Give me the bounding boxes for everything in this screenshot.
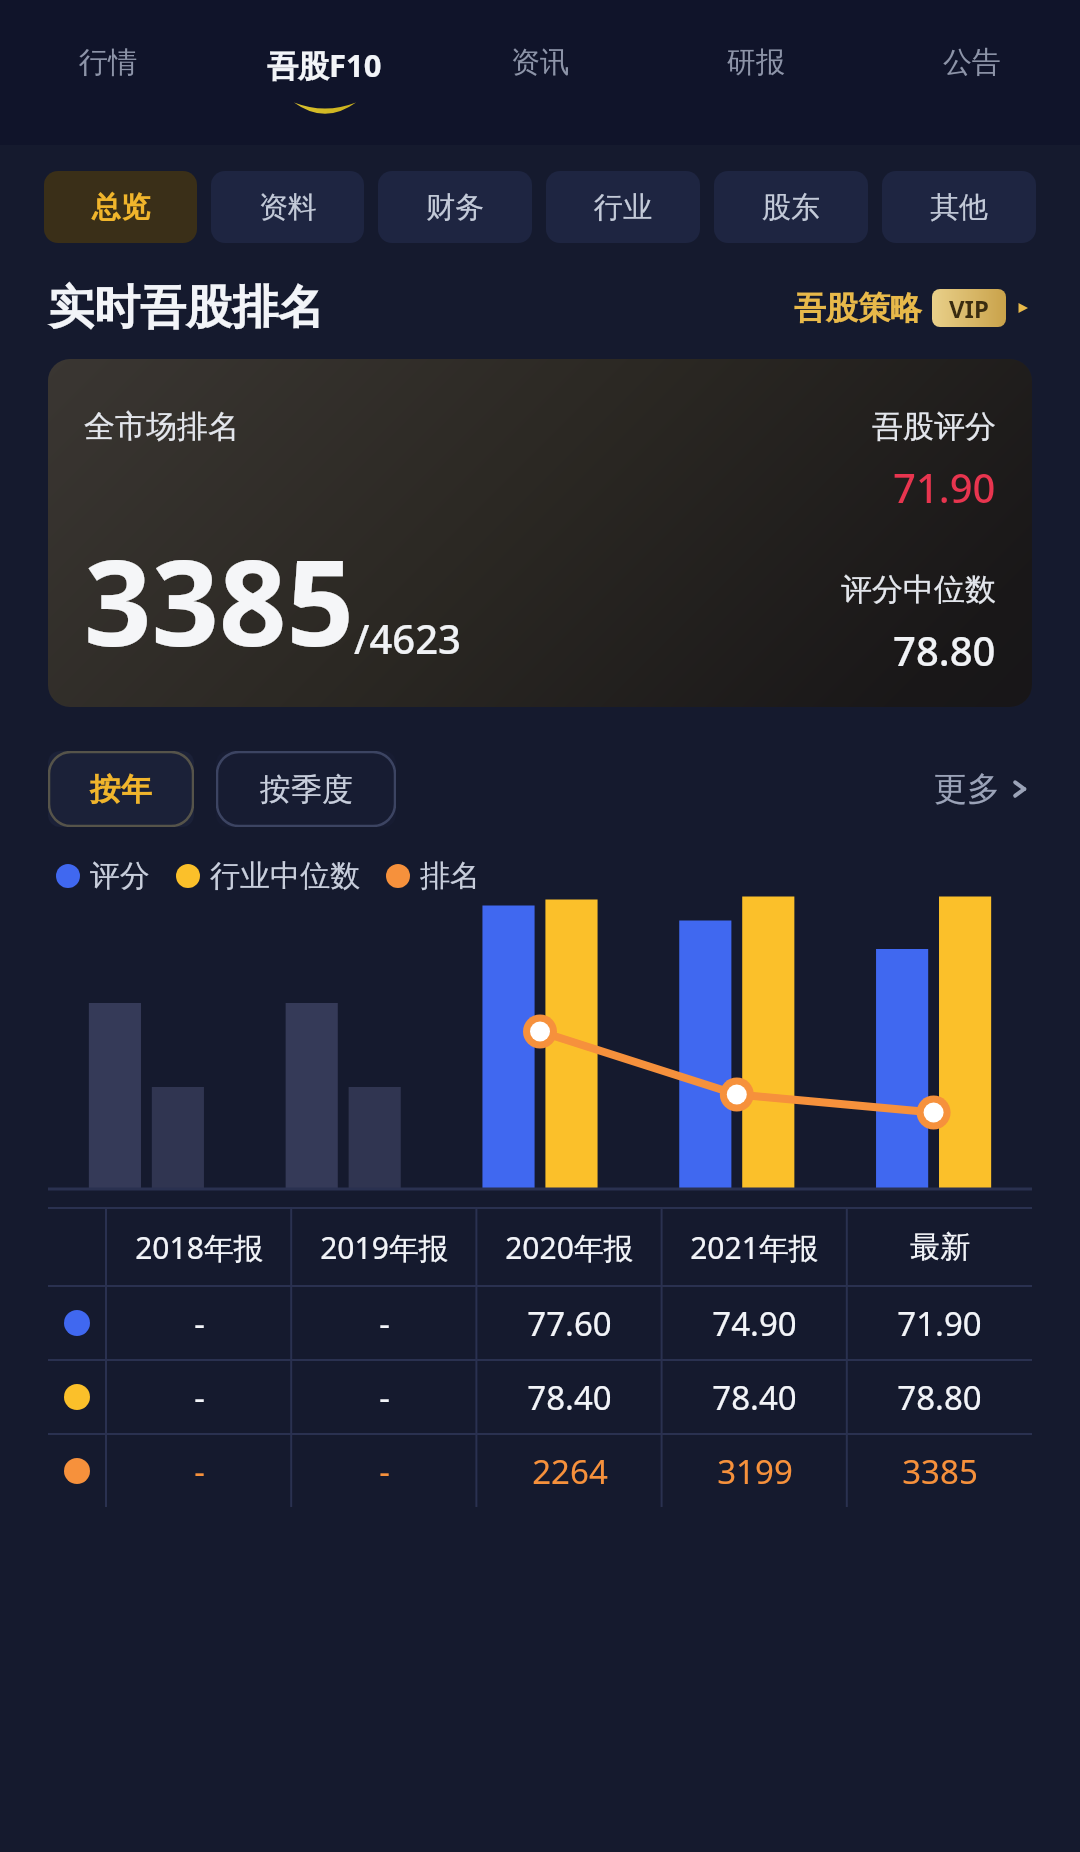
staticText: 78.40 xyxy=(527,1375,612,1420)
button[interactable]: 资料 xyxy=(211,171,364,243)
button[interactable]: 研报 xyxy=(648,44,864,145)
staticText: 排名 xyxy=(420,857,480,895)
staticText: 77.60 xyxy=(527,1301,612,1346)
staticText: 71.90 xyxy=(893,460,996,514)
staticText: 78.80 xyxy=(893,623,996,677)
staticText: VIP xyxy=(949,292,989,325)
staticText: 最新 xyxy=(910,1228,970,1266)
button[interactable]: - xyxy=(48,1435,1032,1507)
button[interactable]: 行业 xyxy=(546,171,700,243)
button[interactable]: 吾股F10 xyxy=(216,44,432,145)
staticText: 其他 xyxy=(930,189,988,226)
button[interactable]: 吾股策略 xyxy=(794,288,1032,328)
button[interactable]: 股东 xyxy=(714,171,868,243)
staticText: 公告 xyxy=(943,44,1001,81)
staticText: 按季度 xyxy=(260,770,353,809)
staticText: 吾股F10 xyxy=(267,44,382,86)
staticText: 研报 xyxy=(727,44,785,81)
staticText: 78.80 xyxy=(897,1375,982,1420)
staticText: 股东 xyxy=(762,189,820,226)
staticText: 2021年报 xyxy=(690,1227,819,1268)
staticText: 行业 xyxy=(594,189,652,226)
button[interactable]: 更多 xyxy=(934,768,1032,810)
staticText: 资讯 xyxy=(511,44,569,81)
staticText: 3385 xyxy=(902,1449,978,1494)
staticText: 行业中位数 xyxy=(210,857,360,895)
staticText: 3199 xyxy=(717,1449,793,1494)
staticText: /4623 xyxy=(354,611,461,665)
button[interactable]: 行情 xyxy=(0,44,216,145)
staticText: 评分中位数 xyxy=(841,570,996,609)
staticText: 2019年报 xyxy=(320,1227,449,1268)
staticText: 资料 xyxy=(259,189,317,226)
button[interactable]: 公告 xyxy=(864,44,1080,145)
staticText: 78.40 xyxy=(712,1375,797,1420)
button[interactable]: - xyxy=(48,1287,1032,1359)
button[interactable]: 全市场排名 xyxy=(48,359,1032,707)
staticText: 财务 xyxy=(426,189,484,226)
staticText: 3385 xyxy=(84,520,354,681)
staticText: 吾股评分 xyxy=(872,407,996,446)
button[interactable]: 总览 xyxy=(44,171,197,243)
staticText: 2018年报 xyxy=(135,1227,264,1268)
staticText: 2020年报 xyxy=(505,1227,634,1268)
staticText: 总览 xyxy=(92,189,150,226)
staticText: 全市场排名 xyxy=(84,407,239,446)
button[interactable]: 按季度 xyxy=(216,751,396,827)
staticText: 按年 xyxy=(90,770,152,809)
staticText: 71.90 xyxy=(897,1301,982,1346)
staticText: 实时吾股排名 xyxy=(48,279,324,337)
staticText: - xyxy=(194,1301,205,1346)
staticText: - xyxy=(194,1375,205,1420)
staticText: 2264 xyxy=(532,1449,608,1494)
staticText: 74.90 xyxy=(712,1301,797,1346)
staticText: - xyxy=(379,1301,390,1346)
button[interactable]: 其他 xyxy=(882,171,1036,243)
button[interactable]: 资讯 xyxy=(432,44,648,145)
staticText: 吾股策略 xyxy=(794,288,922,328)
staticText: - xyxy=(379,1375,390,1420)
staticText: 行情 xyxy=(79,44,137,81)
button[interactable]: 按年 xyxy=(48,751,194,827)
staticText: 更多 xyxy=(934,768,1000,810)
staticText: - xyxy=(194,1449,205,1494)
staticText: 评分 xyxy=(90,857,150,895)
staticText: - xyxy=(379,1449,390,1494)
button[interactable]: 财务 xyxy=(378,171,532,243)
button[interactable]: - xyxy=(48,1361,1032,1433)
